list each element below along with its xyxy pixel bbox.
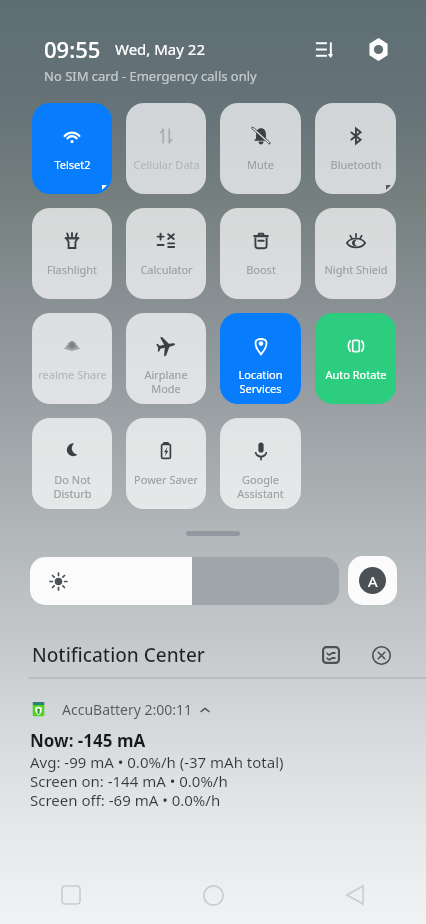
button[interactable]: Notification settings — [316, 640, 346, 670]
staticText: Auto Rotate — [325, 367, 387, 382]
button[interactable]: Flashlight — [32, 208, 112, 299]
staticText: Location Services — [238, 367, 283, 396]
button[interactable]: Night Shield — [315, 208, 396, 299]
button[interactable]: Home — [142, 866, 284, 924]
staticText: Night Shield — [324, 262, 388, 277]
button[interactable]: Airplane Mode — [126, 313, 206, 404]
button[interactable]: Location Services — [220, 313, 301, 404]
button[interactable]: Brightness — [30, 557, 339, 605]
staticText: Calculator — [140, 262, 193, 277]
button[interactable]: Boost — [220, 208, 301, 299]
staticText: Power Saver — [134, 472, 198, 487]
button[interactable]: Cellular Data — [126, 103, 206, 194]
button[interactable]: Edit tiles — [308, 33, 340, 65]
button[interactable]: Do Not Disturb — [32, 418, 112, 509]
button[interactable]: Clear all notifications — [366, 640, 396, 670]
button[interactable]: Telset2 — [32, 103, 112, 194]
staticText: Cellular Data — [133, 157, 200, 172]
staticText: Boost — [246, 262, 276, 277]
button[interactable]: Auto brightness — [348, 556, 397, 605]
button[interactable]: Auto Rotate — [315, 313, 396, 404]
staticText: A — [368, 571, 378, 591]
staticText: Now: -145 mA — [30, 729, 146, 752]
button[interactable]: Back — [284, 866, 426, 924]
staticText: Bluetooth — [330, 157, 382, 172]
button[interactable]: Bluetooth — [315, 103, 396, 194]
staticText: 09:55 — [44, 34, 101, 64]
staticText: Notification Center — [32, 642, 205, 668]
staticText: Telset2 — [54, 157, 91, 172]
button[interactable]: Mute — [220, 103, 301, 194]
staticText: No SIM card - Emergency calls only — [44, 67, 257, 85]
button[interactable]: Settings — [362, 33, 394, 65]
staticText: Wed, May 22 — [115, 39, 205, 59]
button[interactable]: Recents — [0, 866, 142, 924]
staticText: Flashlight — [47, 262, 97, 277]
button[interactable]: Calculator — [126, 208, 206, 299]
staticText: Google Assistant — [237, 472, 284, 501]
button[interactable]: Google Assistant — [220, 418, 301, 509]
staticText: Do Not Disturb — [53, 472, 92, 501]
button[interactable]: AccuBattery 2:00:11 — [30, 700, 402, 810]
staticText: Airplane Mode — [144, 367, 188, 396]
staticText: realme Share — [38, 367, 107, 382]
staticText: AccuBattery 2:00:11 — [62, 700, 193, 719]
button[interactable]: realme Share — [32, 313, 112, 404]
staticText: Avg: -99 mA • 0.0%/h (-37 mAh total) Scr… — [30, 752, 284, 810]
staticText: Mute — [247, 157, 274, 172]
button[interactable]: Power Saver — [126, 418, 206, 509]
